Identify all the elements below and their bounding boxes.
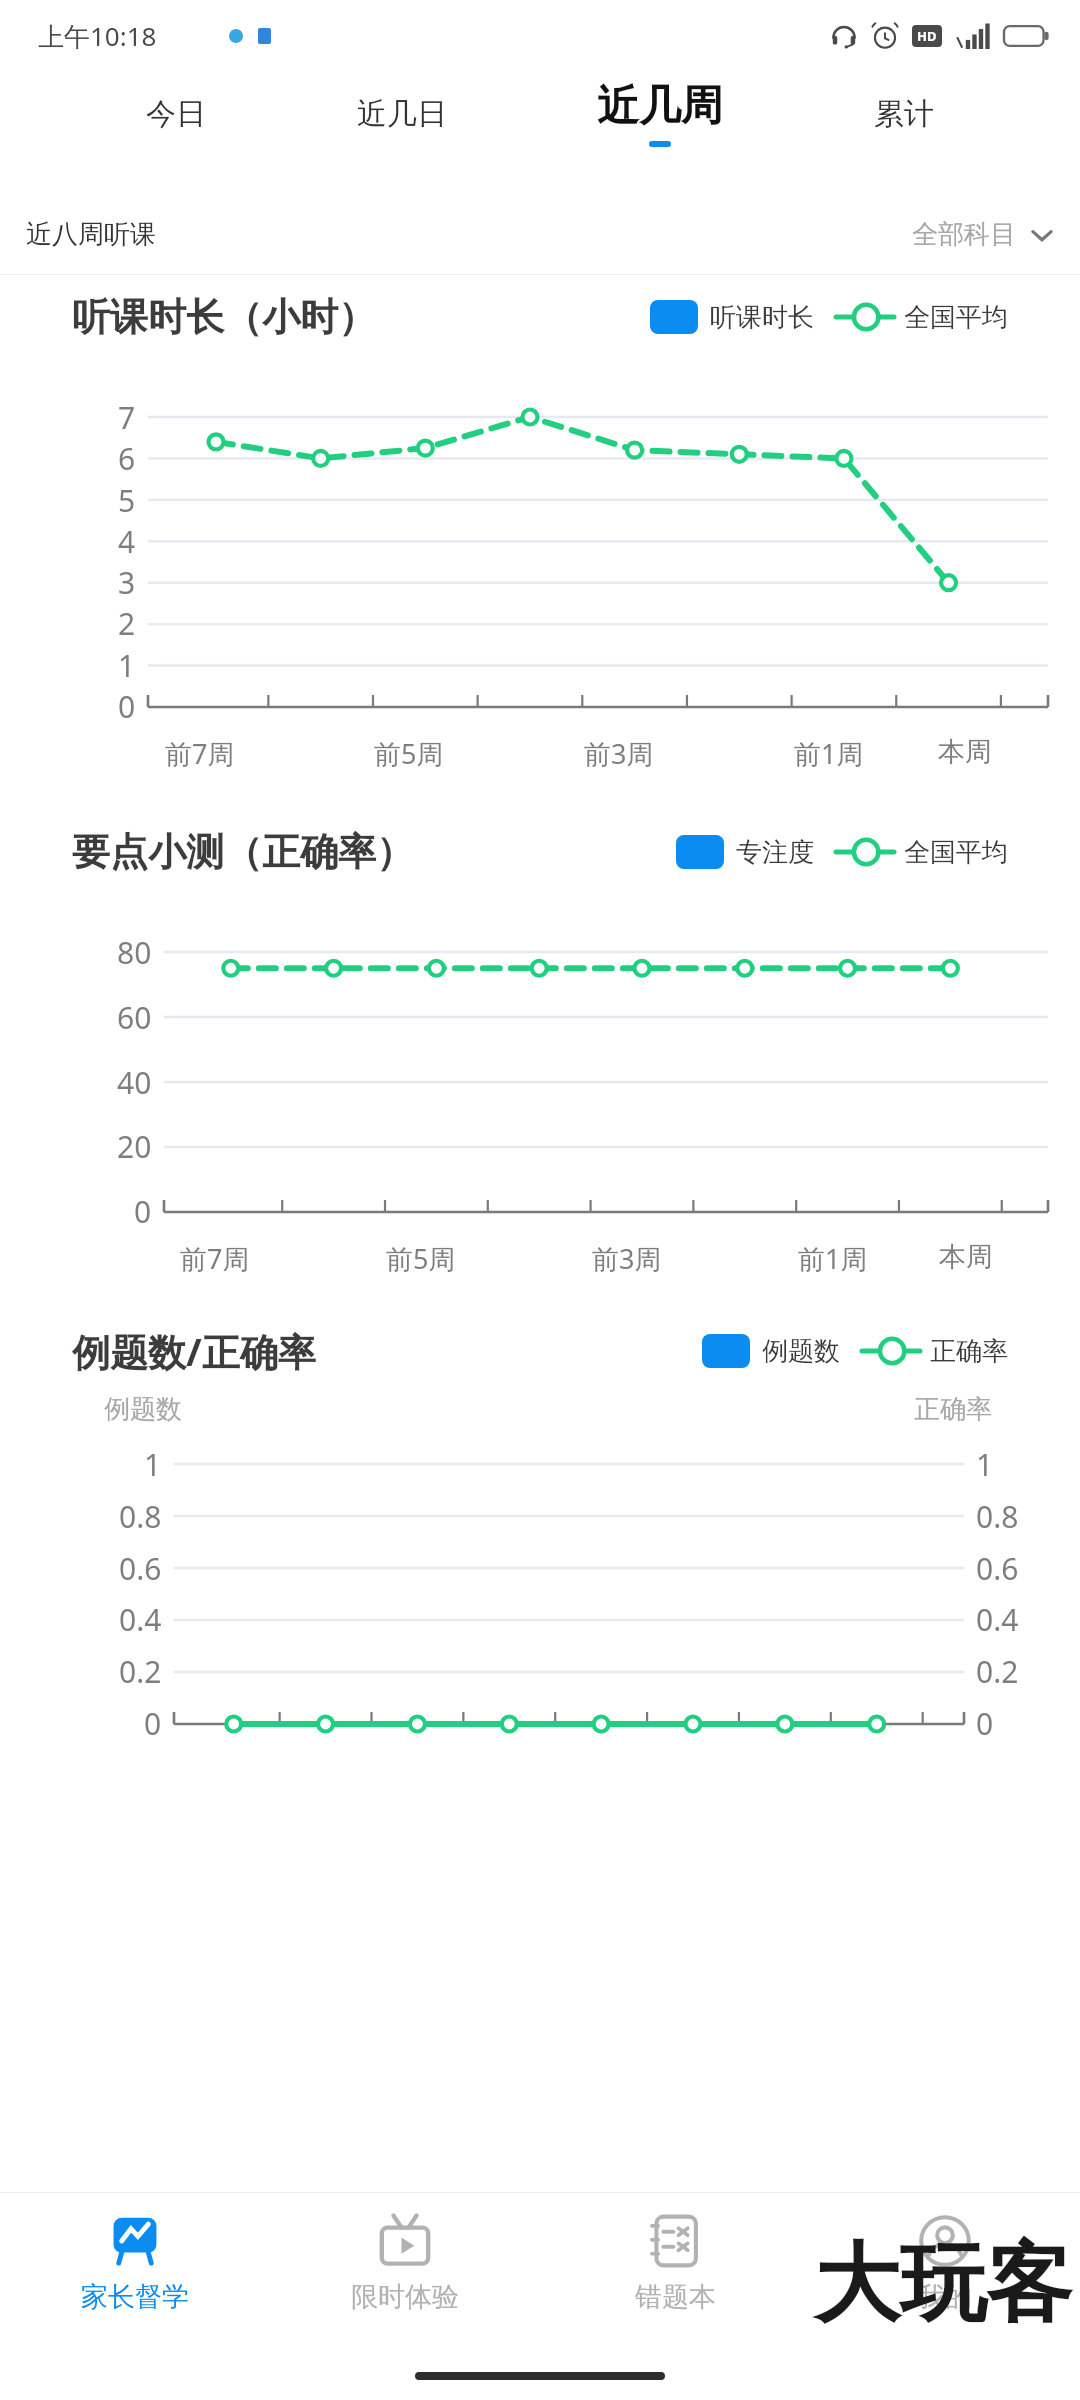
staticText: 全国平均 bbox=[904, 301, 1008, 334]
staticText: 要点小测（正确率） bbox=[72, 828, 414, 876]
staticText: 0.8 bbox=[976, 1496, 1019, 1537]
staticText: 例题数 bbox=[762, 1335, 840, 1368]
staticText: 大玩客 bbox=[814, 2230, 1072, 2338]
staticText: 听课时长 bbox=[710, 301, 814, 334]
staticText: 我的 bbox=[918, 2280, 972, 2314]
staticText: 1 bbox=[144, 1444, 162, 1485]
button[interactable]: 近几周 bbox=[591, 72, 729, 155]
staticText: 本周 bbox=[939, 1240, 993, 1274]
staticText: 听课时长（小时） bbox=[72, 293, 376, 341]
staticText: 今日 bbox=[146, 95, 206, 133]
button[interactable]: 累计 bbox=[868, 87, 940, 141]
staticText: 0.8 bbox=[119, 1496, 162, 1537]
staticText: 0 bbox=[144, 1703, 162, 1744]
staticText: 20 bbox=[117, 1126, 152, 1167]
staticText: 1 bbox=[118, 645, 136, 686]
staticText: 80 bbox=[117, 932, 152, 973]
staticText: 0.4 bbox=[119, 1599, 162, 1640]
staticText: 例题数/正确率 bbox=[72, 1325, 316, 1377]
staticText: 前1周 bbox=[798, 1240, 868, 1277]
staticText: 60 bbox=[117, 997, 152, 1038]
button[interactable]: 今日 bbox=[140, 87, 212, 141]
button[interactable]: 家长督学 bbox=[0, 2192, 270, 2350]
staticText: 5 bbox=[118, 480, 136, 521]
staticText: 前3周 bbox=[592, 1240, 662, 1277]
staticText: 累计 bbox=[874, 95, 934, 133]
staticText: 近几周 bbox=[597, 80, 723, 133]
staticText: 0.2 bbox=[976, 1651, 1019, 1692]
staticText: 0.2 bbox=[119, 1651, 162, 1692]
staticText: 前5周 bbox=[386, 1240, 456, 1277]
staticText: 4 bbox=[118, 521, 136, 562]
staticText: 0 bbox=[118, 686, 136, 727]
staticText: 6 bbox=[118, 438, 136, 479]
staticText: 3 bbox=[118, 562, 136, 603]
staticText: 限时体验 bbox=[351, 2280, 459, 2314]
staticText: 近几日 bbox=[357, 95, 447, 133]
staticText: 0.4 bbox=[976, 1599, 1019, 1640]
staticText: 前7周 bbox=[180, 1240, 250, 1277]
staticText: 全国平均 bbox=[904, 836, 1008, 869]
button[interactable]: 我的 bbox=[810, 2192, 1080, 2350]
staticText: 0.6 bbox=[976, 1548, 1019, 1589]
button[interactable]: 错题本 bbox=[540, 2192, 810, 2350]
button[interactable]: 近几日 bbox=[351, 87, 453, 141]
staticText: 1 bbox=[976, 1444, 994, 1485]
staticText: 2 bbox=[118, 603, 136, 644]
staticText: 0.6 bbox=[119, 1548, 162, 1589]
staticText: 例题数 bbox=[104, 1393, 182, 1426]
staticText: 7 bbox=[118, 397, 136, 438]
staticText: 近八周听课 bbox=[26, 218, 156, 251]
staticText: 前7周 bbox=[165, 735, 235, 772]
staticText: 正确率 bbox=[930, 1335, 1008, 1368]
staticText: 前5周 bbox=[374, 735, 444, 772]
staticText: 正确率 bbox=[914, 1393, 992, 1426]
staticText: 全部科目 bbox=[912, 218, 1016, 251]
staticText: 0 bbox=[976, 1703, 994, 1744]
staticText: 40 bbox=[117, 1062, 152, 1103]
staticText: 上午10:18 bbox=[38, 18, 157, 54]
button[interactable]: 全部科目 bbox=[912, 218, 1054, 251]
staticText: HD bbox=[917, 27, 937, 45]
button[interactable]: 限时体验 bbox=[270, 2192, 540, 2350]
staticText: 前1周 bbox=[794, 735, 864, 772]
staticText: 错题本 bbox=[635, 2280, 716, 2314]
staticText: 家长督学 bbox=[81, 2280, 189, 2314]
staticText: 专注度 bbox=[736, 836, 814, 869]
staticText: 前3周 bbox=[584, 735, 654, 772]
staticText: 0 bbox=[134, 1191, 152, 1232]
staticText: 本周 bbox=[938, 735, 992, 769]
